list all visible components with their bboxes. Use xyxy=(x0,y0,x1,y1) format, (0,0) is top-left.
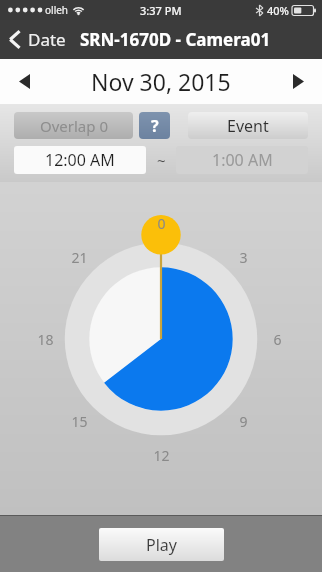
staticText: SRN-1670D - Camera01 xyxy=(80,28,271,51)
staticText: Event xyxy=(227,115,269,137)
staticText: Play xyxy=(146,534,177,556)
staticText: Date xyxy=(28,28,66,51)
staticText: 15 xyxy=(71,412,88,430)
staticText: 3:37 PM xyxy=(140,3,182,18)
staticText: Nov 30, 2015 xyxy=(91,66,231,97)
button[interactable]: Overlap 0 xyxy=(14,112,133,139)
button[interactable]: Event xyxy=(188,112,308,139)
staticText: 21 xyxy=(71,248,88,266)
staticText: 12 xyxy=(153,446,170,464)
button[interactable]: Help xyxy=(139,112,170,139)
button[interactable]: 1:00 AM xyxy=(176,146,308,174)
staticText: ~ xyxy=(157,150,166,170)
button[interactable]: Previous day xyxy=(0,59,48,104)
staticText: 18 xyxy=(37,330,54,348)
staticText: Overlap 0 xyxy=(40,116,108,136)
staticText: 0 xyxy=(157,214,166,232)
staticText: 6 xyxy=(273,330,282,348)
staticText: 3 xyxy=(239,248,248,266)
button[interactable]: Next day xyxy=(274,59,322,104)
button[interactable]: Play xyxy=(99,528,224,561)
button[interactable]: Date xyxy=(0,24,72,55)
staticText: 1:00 AM xyxy=(212,149,273,171)
staticText: 12:00 AM xyxy=(45,149,115,171)
staticText: ? xyxy=(151,115,159,137)
staticText: 9 xyxy=(239,412,248,430)
button[interactable]: 12:00 AM xyxy=(14,146,146,174)
staticText: 40% xyxy=(267,3,289,18)
staticText: olleh xyxy=(45,3,69,17)
